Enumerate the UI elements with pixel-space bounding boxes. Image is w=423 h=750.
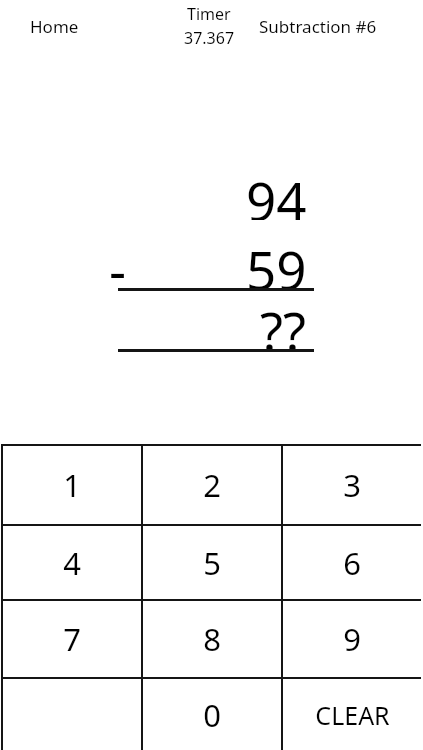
staticText: 4 <box>63 542 81 584</box>
button[interactable]: 3 <box>283 446 421 524</box>
staticText: Subtraction #6 <box>259 15 377 38</box>
button[interactable]: 6 <box>283 526 421 599</box>
button[interactable]: 9 <box>283 601 421 677</box>
button[interactable]: 1 <box>3 446 141 524</box>
button[interactable]: 0 <box>143 679 281 750</box>
button[interactable]: 7 <box>3 601 141 677</box>
button[interactable]: Timer <box>159 3 259 49</box>
staticText: CLEAR <box>315 698 390 732</box>
staticText: 2 <box>203 464 221 506</box>
button[interactable]: Home <box>14 10 94 42</box>
staticText: - <box>109 233 127 289</box>
staticText: 37.367 <box>184 27 235 49</box>
staticText: 94 <box>246 164 307 220</box>
staticText: 3 <box>343 464 361 506</box>
staticText: Home <box>30 15 79 38</box>
staticText: 0 <box>203 694 221 736</box>
staticText: 6 <box>343 542 361 584</box>
button[interactable]: 2 <box>143 446 281 524</box>
staticText: Timer <box>187 3 231 25</box>
staticText: ?? <box>260 294 307 350</box>
staticText: 1 <box>63 464 81 506</box>
staticText: 59 <box>246 233 307 289</box>
button[interactable]: 5 <box>143 526 281 599</box>
staticText: 9 <box>343 618 361 660</box>
staticText: 8 <box>203 618 221 660</box>
button[interactable]: CLEAR <box>283 679 421 750</box>
button[interactable]: 4 <box>3 526 141 599</box>
button[interactable]: 8 <box>143 601 281 677</box>
staticText: 5 <box>203 542 221 584</box>
staticText: 7 <box>63 618 81 660</box>
